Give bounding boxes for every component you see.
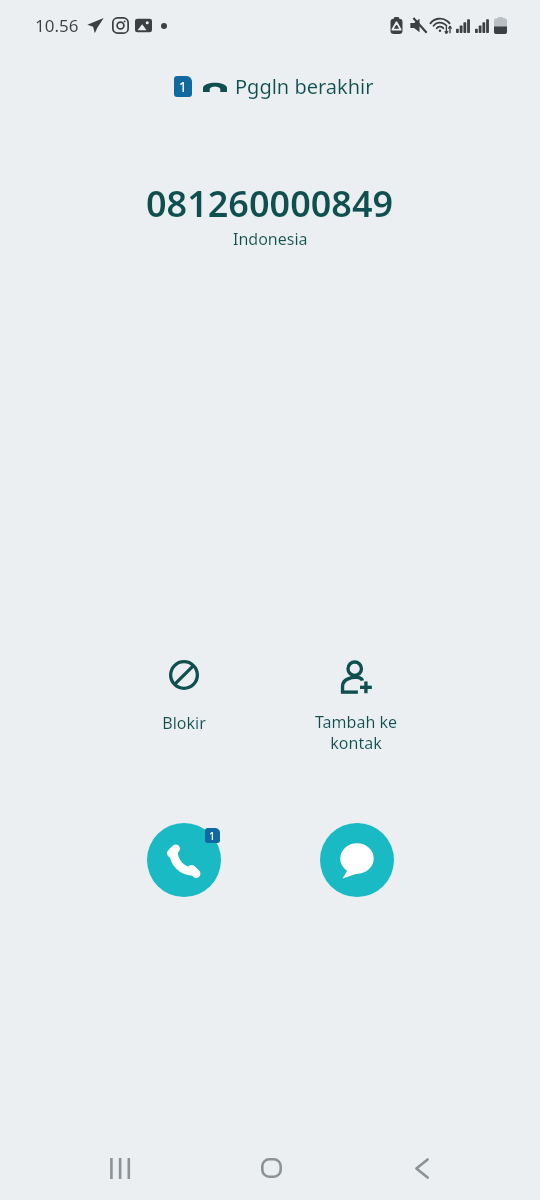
button[interactable]: Call xyxy=(147,823,221,897)
staticText: 1 xyxy=(209,828,216,843)
button[interactable]: Home xyxy=(239,1136,303,1200)
button[interactable]: Message xyxy=(320,823,394,897)
staticText: 1 xyxy=(179,77,188,96)
button[interactable]: Recent apps xyxy=(88,1136,152,1200)
staticText: Blokir xyxy=(162,712,206,734)
staticText: 081260000849 xyxy=(146,179,394,228)
staticText: Indonesia xyxy=(233,228,308,250)
staticText: Tambah ke kontak xyxy=(315,711,397,754)
button[interactable]: Blokir xyxy=(124,652,244,748)
button[interactable]: Tambah ke kontak xyxy=(296,655,416,771)
staticText: Pggln berakhir xyxy=(235,73,374,100)
staticText: 10.56 xyxy=(35,14,79,37)
button[interactable]: Back xyxy=(390,1136,454,1200)
